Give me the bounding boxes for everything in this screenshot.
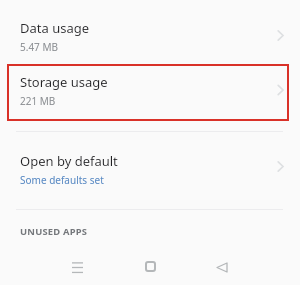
staticText: Data usage (20, 19, 90, 37)
button[interactable]: Recent apps (61, 251, 93, 283)
button[interactable]: Open by default (0, 147, 300, 189)
button[interactable]: Storage usage (0, 68, 300, 110)
staticText: Storage usage (20, 73, 108, 91)
staticText: 5.47 MB (20, 40, 59, 54)
staticText: UNUSED APPS (20, 225, 88, 238)
button[interactable]: Back (206, 251, 238, 283)
staticText: Open by default (20, 152, 118, 170)
button[interactable]: Data usage (0, 14, 300, 56)
staticText: Some defaults set (20, 173, 104, 187)
staticText: 221 MB (20, 94, 56, 108)
button[interactable]: Home (134, 250, 166, 282)
